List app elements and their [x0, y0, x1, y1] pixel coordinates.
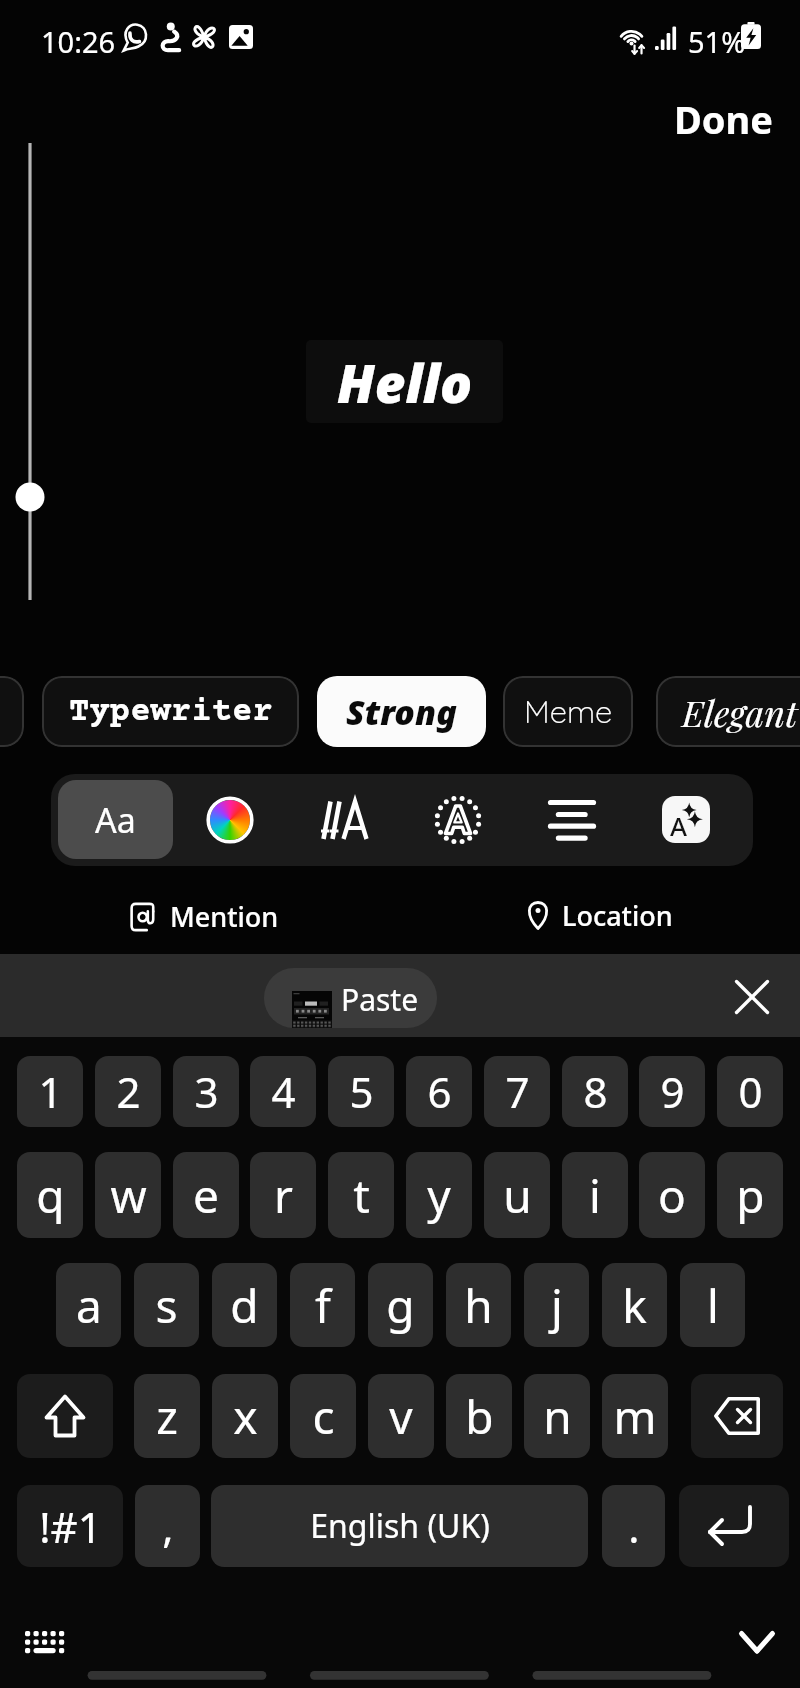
- staticText: o: [658, 1164, 686, 1227]
- staticText: e: [193, 1164, 219, 1227]
- staticText: ,: [162, 1498, 174, 1555]
- button[interactable]: English (UK): [211, 1485, 588, 1567]
- staticText: 7: [505, 1063, 530, 1120]
- staticText: 1: [38, 1063, 63, 1120]
- button[interactable]: !#1: [17, 1485, 123, 1567]
- button[interactable]: p: [717, 1152, 783, 1238]
- staticText: m: [613, 1385, 657, 1448]
- staticText: Strong: [346, 689, 457, 735]
- button[interactable]: m: [602, 1374, 668, 1458]
- button[interactable]: c: [290, 1374, 356, 1458]
- button[interactable]: z: [134, 1374, 200, 1458]
- staticText: Meme: [524, 692, 613, 731]
- button[interactable]: q: [17, 1152, 83, 1238]
- staticText: y: [427, 1164, 451, 1227]
- staticText: Hello: [337, 346, 473, 418]
- button[interactable]: b: [446, 1374, 512, 1458]
- button[interactable]: u: [484, 1152, 550, 1238]
- staticText: x: [233, 1385, 258, 1448]
- button[interactable]: 9: [639, 1056, 705, 1127]
- button[interactable]: Colour: [196, 786, 264, 854]
- staticText: b: [465, 1385, 494, 1448]
- staticText: t: [353, 1164, 370, 1227]
- button[interactable]: l: [680, 1263, 745, 1347]
- button[interactable]: a: [56, 1263, 121, 1347]
- button[interactable]: w: [95, 1152, 161, 1238]
- button[interactable]: Elegant: [656, 676, 800, 747]
- staticText: j: [551, 1274, 563, 1337]
- button[interactable]: j: [524, 1263, 589, 1347]
- staticText: d: [230, 1274, 259, 1337]
- button[interactable]: r: [250, 1152, 316, 1238]
- button[interactable]: 3: [173, 1056, 239, 1127]
- staticText: 0: [738, 1063, 763, 1120]
- button[interactable]: Typewriter: [42, 676, 299, 747]
- button[interactable]: Backspace: [691, 1374, 783, 1458]
- staticText: v: [389, 1385, 413, 1448]
- button[interactable]: x: [212, 1374, 278, 1458]
- button[interactable]: y: [406, 1152, 472, 1238]
- staticText: r: [274, 1164, 293, 1227]
- button[interactable]: 6: [406, 1056, 472, 1127]
- button[interactable]: Strong: [317, 676, 486, 747]
- staticText: s: [155, 1274, 178, 1337]
- staticText: l: [707, 1274, 719, 1337]
- button[interactable]: k: [602, 1263, 667, 1347]
- staticText: w: [110, 1164, 147, 1227]
- staticText: 10:26: [41, 22, 116, 61]
- button[interactable]: 2: [95, 1056, 161, 1127]
- button[interactable]: g: [368, 1263, 433, 1347]
- staticText: .: [628, 1498, 640, 1555]
- staticText: 2: [116, 1063, 141, 1120]
- button[interactable]: Hello: [306, 340, 503, 423]
- button[interactable]: Close: [729, 974, 775, 1020]
- button[interactable]: Meme: [503, 676, 633, 747]
- button[interactable]: h: [446, 1263, 511, 1347]
- button[interactable]: Paste: [264, 968, 437, 1028]
- button[interactable]: [0, 676, 24, 747]
- button[interactable]: 1: [17, 1056, 83, 1127]
- button[interactable]: s: [134, 1263, 199, 1347]
- button[interactable]: Aa: [58, 780, 173, 859]
- staticText: 4: [271, 1063, 296, 1120]
- button[interactable]: Text animation: [424, 786, 492, 854]
- button[interactable]: 4: [250, 1056, 316, 1127]
- button[interactable]: Shift: [17, 1374, 113, 1458]
- staticText: 6: [427, 1063, 452, 1120]
- staticText: z: [156, 1385, 178, 1448]
- staticText: n: [543, 1385, 572, 1448]
- button[interactable]: t: [328, 1152, 394, 1238]
- button[interactable]: n: [524, 1374, 590, 1458]
- button[interactable]: o: [639, 1152, 705, 1238]
- staticText: p: [736, 1164, 765, 1227]
- button[interactable]: Enter: [679, 1485, 789, 1567]
- staticText: !#1: [39, 1498, 102, 1555]
- button[interactable]: 5: [328, 1056, 394, 1127]
- staticText: Done: [674, 93, 773, 145]
- button[interactable]: .: [602, 1485, 665, 1567]
- button[interactable]: Alignment: [538, 786, 606, 854]
- button[interactable]: Letter spacing: [311, 786, 379, 854]
- button[interactable]: v: [368, 1374, 434, 1458]
- button[interactable]: i: [562, 1152, 628, 1238]
- button[interactable]: 0: [717, 1056, 783, 1127]
- button[interactable]: ,: [135, 1485, 200, 1567]
- staticText: a: [76, 1274, 102, 1337]
- staticText: 9: [660, 1063, 685, 1120]
- button[interactable]: Mention: [120, 898, 289, 935]
- button[interactable]: 8: [562, 1056, 628, 1127]
- button[interactable]: 7: [484, 1056, 550, 1127]
- staticText: Typewriter: [69, 693, 273, 731]
- button[interactable]: Done: [652, 81, 795, 157]
- button[interactable]: f: [290, 1263, 355, 1347]
- button[interactable]: d: [212, 1263, 277, 1347]
- staticText: English (UK): [310, 1504, 490, 1548]
- button[interactable]: Keyboard layout: [5, 1611, 83, 1669]
- button[interactable]: e: [173, 1152, 239, 1238]
- staticText: u: [503, 1164, 532, 1227]
- button[interactable]: Hide keyboard: [722, 1611, 792, 1669]
- button[interactable]: Location: [518, 897, 683, 934]
- button[interactable]: AI text effects: [662, 796, 710, 843]
- staticText: 51%: [688, 22, 746, 61]
- staticText: Elegant: [682, 688, 798, 736]
